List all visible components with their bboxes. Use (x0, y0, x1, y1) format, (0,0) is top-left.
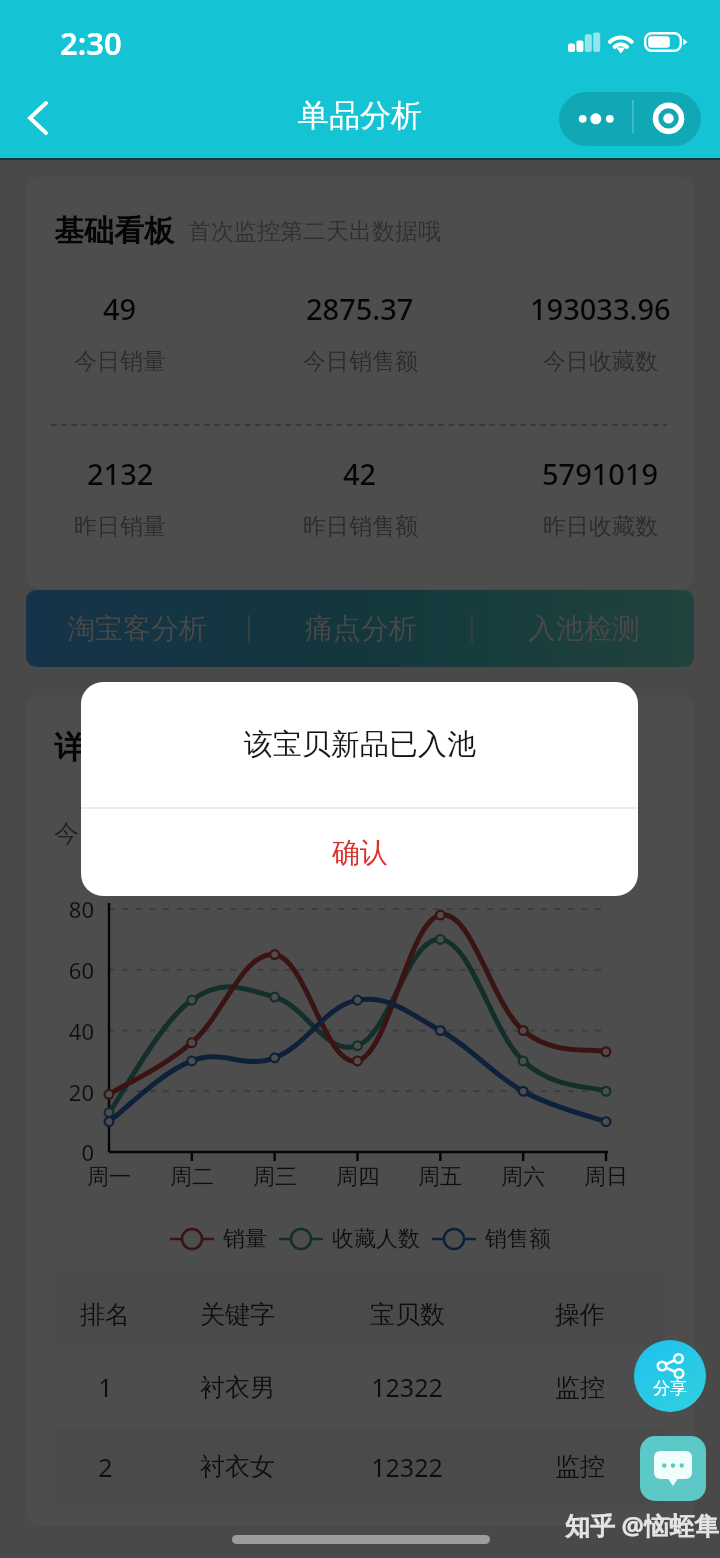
staticText: 60 (40, 955, 94, 985)
staticText: 今日销量 (74, 347, 166, 376)
staticText: 分享 (653, 1378, 687, 1399)
staticText: 周日 (571, 1163, 641, 1191)
button[interactable]: 2 (43, 1429, 167, 1504)
staticText: 80 (40, 894, 94, 924)
staticText: 193033.96 (530, 289, 671, 328)
button[interactable]: 排名 (43, 1278, 167, 1351)
staticText: 销售额 (485, 1225, 551, 1253)
staticText: 详情分析 (54, 728, 178, 767)
staticText: 操作 (555, 1299, 605, 1330)
staticText: 该宝贝新品已入池 (244, 726, 476, 763)
button[interactable]: 客服 (640, 1436, 706, 1501)
button[interactable]: 淘宝客分析 (26, 590, 248, 667)
staticText: 今日销售额 (303, 347, 418, 376)
staticText: 销量 (223, 1225, 267, 1253)
button[interactable]: 关键字 (175, 1278, 299, 1351)
staticText: 单品分析 (298, 96, 422, 135)
button[interactable]: Close (634, 92, 701, 146)
staticText: 入池检测 (528, 611, 640, 646)
button[interactable]: 1 (43, 1345, 167, 1429)
staticText: 12322 (371, 1450, 443, 1484)
staticText: 1 (98, 1370, 113, 1404)
staticText: 周二 (157, 1163, 227, 1191)
staticText: 昨日收藏数 (543, 512, 658, 541)
staticText: 宝贝数 (370, 1299, 445, 1330)
staticText: 淘宝客分析 (67, 611, 207, 646)
button[interactable]: 12322 (345, 1345, 469, 1429)
staticText: 12322 (371, 1370, 443, 1404)
staticText: 痛点分析 (305, 611, 417, 646)
staticText: 2:30 (60, 22, 122, 64)
staticText: 0 (40, 1137, 94, 1167)
staticText: 知乎 @恼蛭隼 (565, 1508, 719, 1542)
staticText: 2 (98, 1450, 113, 1484)
staticText: 昨日销量 (74, 512, 166, 541)
staticText: 20 (40, 1077, 94, 1107)
staticText: 周一 (74, 1163, 144, 1191)
staticText: 今日收藏数 (543, 347, 658, 376)
button[interactable]: 监控 (518, 1429, 642, 1504)
staticText: 衬衣男 (200, 1372, 275, 1403)
staticText: 关键字 (200, 1299, 275, 1330)
staticText: 今日数据 (54, 818, 154, 849)
button[interactable]: 确认 (81, 809, 638, 896)
staticText: 49 (103, 289, 137, 328)
staticText: 监控 (555, 1372, 605, 1403)
staticText: 周四 (323, 1163, 393, 1191)
button[interactable]: 操作 (518, 1278, 642, 1351)
staticText: 衬衣女 (200, 1451, 275, 1482)
staticText: 2875.37 (306, 289, 414, 328)
button[interactable]: 监控 (518, 1345, 642, 1429)
staticText: 周五 (405, 1163, 475, 1191)
staticText: 首次监控第二天出数据哦 (188, 217, 441, 246)
staticText: 周三 (240, 1163, 310, 1191)
button[interactable]: 分享 (634, 1340, 706, 1412)
staticText: 基础看板 (54, 212, 174, 250)
staticText: 收藏人数 (332, 1225, 420, 1253)
button[interactable]: Back (9, 90, 65, 146)
button[interactable]: More options (559, 92, 633, 146)
staticText: 确认 (332, 835, 388, 870)
button[interactable]: 衬衣男 (175, 1345, 299, 1429)
button[interactable]: 衬衣女 (175, 1429, 299, 1504)
staticText: 40 (40, 1016, 94, 1046)
button[interactable]: 入池检测 (473, 590, 694, 667)
button[interactable]: 12322 (345, 1429, 469, 1504)
staticText: 排名 (80, 1299, 130, 1330)
staticText: 昨日销售额 (303, 512, 418, 541)
button[interactable]: 痛点分析 (250, 590, 471, 667)
staticText: 2132 (87, 454, 154, 493)
staticText: 监控 (555, 1451, 605, 1482)
staticText: 42 (343, 454, 377, 493)
staticText: 周六 (488, 1163, 558, 1191)
staticText: 5791019 (542, 454, 659, 493)
button[interactable]: 宝贝数 (345, 1278, 469, 1351)
